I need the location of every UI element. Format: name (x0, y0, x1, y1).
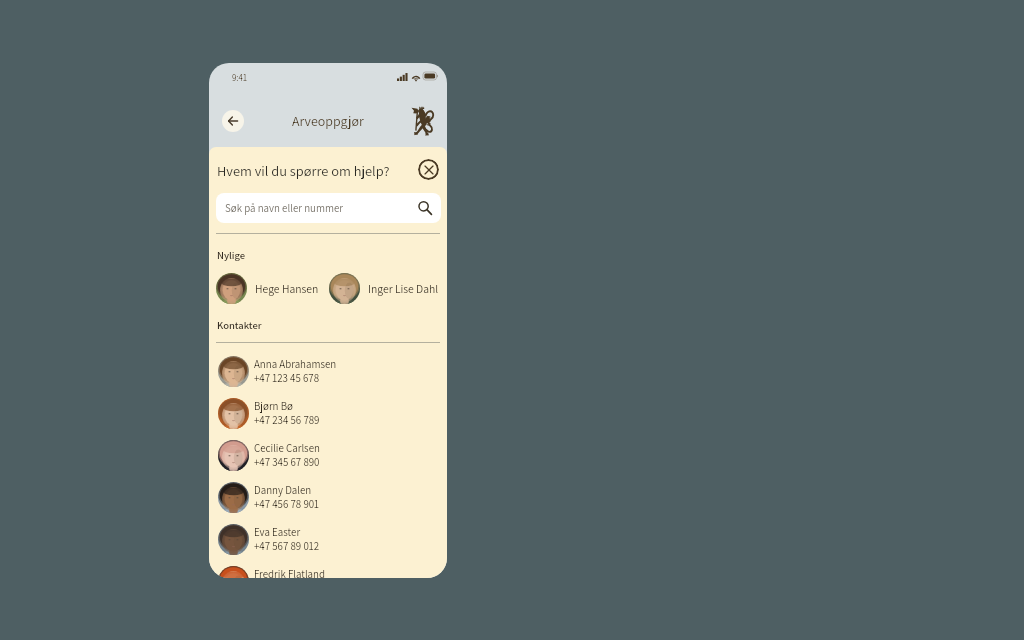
button[interactable]: Bjørn Bø (209, 392, 447, 434)
staticText: +47 567 89 012 (254, 539, 320, 553)
button[interactable]: Søk på navn eller nummer (216, 193, 441, 223)
staticText: Hege Hansen (255, 281, 319, 296)
button[interactable]: Lukk (418, 159, 439, 180)
staticText: Hvem vil du spørre om hjelp? (217, 161, 390, 180)
staticText: Søk på navn eller nummer (225, 201, 343, 215)
staticText: Eva Easter (254, 525, 301, 539)
staticText: +47 456 78 901 (254, 497, 320, 511)
staticText: Arveoppgjør (292, 112, 364, 130)
staticText: Inger Lise Dahl (368, 281, 439, 296)
staticText: +47 345 67 890 (254, 455, 320, 469)
button[interactable]: Fredrik Flatland (209, 560, 447, 578)
button[interactable]: Tilbake (222, 110, 244, 132)
staticText: 9:41 (232, 72, 247, 84)
staticText: +47 234 56 789 (254, 413, 320, 427)
button[interactable]: Hege Hansen (216, 273, 319, 304)
button[interactable]: Danny Dalen (209, 476, 447, 518)
staticText: Danny Dalen (254, 483, 312, 497)
staticText: Bjørn Bø (254, 399, 293, 413)
button[interactable]: Inger Lise Dahl (329, 273, 439, 304)
staticText: Nylige (217, 248, 246, 262)
staticText: Fredrik Flatland (254, 567, 325, 578)
staticText: +47 123 45 678 (254, 371, 320, 385)
button[interactable]: Anna Abrahamsen (209, 350, 447, 392)
button[interactable]: Cecilie Carlsen (209, 434, 447, 476)
staticText: Cecilie Carlsen (254, 441, 320, 455)
staticText: Anna Abrahamsen (254, 357, 337, 371)
button[interactable]: Eva Easter (209, 518, 447, 560)
staticText: Kontakter (217, 318, 262, 332)
